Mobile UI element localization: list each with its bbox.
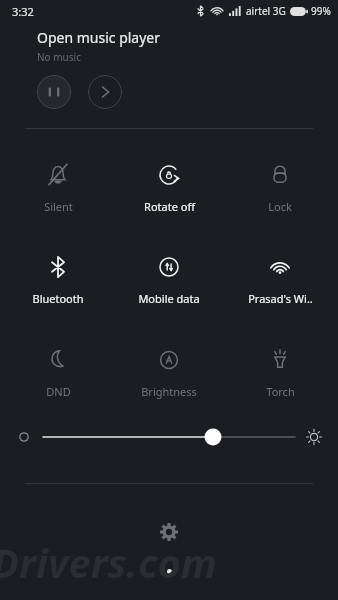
- button[interactable]: Lock: [227, 158, 333, 216]
- button[interactable]: DND: [5, 343, 111, 401]
- button[interactable]: Settings: [151, 514, 187, 550]
- button[interactable]: Silent: [5, 158, 111, 216]
- staticText: Open music player: [37, 28, 161, 47]
- staticText: Brightness: [141, 384, 197, 399]
- button[interactable]: Torch: [227, 343, 333, 401]
- button[interactable]: Prasad's Wi..: [227, 250, 333, 308]
- staticText: Silent: [44, 199, 73, 214]
- staticText: 3:32: [12, 4, 34, 19]
- staticText: Lock: [268, 199, 292, 214]
- staticText: No music: [37, 50, 81, 64]
- staticText: Bluetooth: [32, 291, 84, 306]
- button[interactable]: Brightness: [116, 343, 222, 401]
- staticText: Mobile data: [138, 291, 200, 306]
- button[interactable]: Mobile data: [116, 250, 222, 308]
- button[interactable]: Open music player: [37, 28, 161, 47]
- staticText: airtel 3G: [246, 4, 286, 18]
- staticText: DND: [46, 384, 71, 399]
- staticText: Drivers.com: [0, 535, 217, 589]
- button[interactable]: Brightness slider: [0, 418, 338, 456]
- staticText: Prasad's Wi..: [248, 291, 313, 306]
- button[interactable]: Rotate off: [116, 158, 222, 216]
- button[interactable]: Bluetooth: [5, 250, 111, 308]
- staticText: Torch: [266, 384, 295, 399]
- button[interactable]: Next: [88, 75, 122, 109]
- staticText: 99%: [311, 4, 331, 18]
- button[interactable]: Pause: [37, 75, 71, 109]
- staticText: Rotate off: [144, 199, 195, 214]
